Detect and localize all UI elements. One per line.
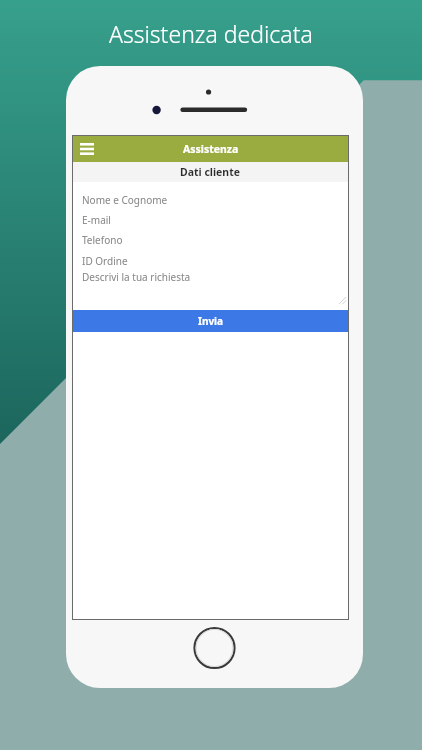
button[interactable]: Invia — [73, 310, 348, 332]
staticText: Assistenza dedicata — [109, 18, 313, 49]
button[interactable]: ID Ordine — [73, 252, 348, 269]
button[interactable]: E-mail — [73, 210, 348, 230]
button[interactable]: Telefono — [73, 230, 348, 250]
button[interactable]: Nome e Cognome — [73, 190, 348, 210]
staticText: Nome e Cognome — [82, 193, 168, 207]
staticText: E-mail — [82, 213, 111, 227]
staticText: Telefono — [82, 233, 123, 247]
staticText: Assistenza — [183, 142, 239, 156]
button[interactable]: Menu — [78, 140, 96, 158]
staticText: ID Ordine — [82, 254, 128, 268]
staticText: Descrivi la tua richiesta — [82, 270, 191, 284]
staticText: Invia — [198, 314, 224, 328]
staticText: Dati cliente — [180, 165, 241, 179]
button[interactable]: Descrivi la tua richiesta — [73, 269, 348, 307]
